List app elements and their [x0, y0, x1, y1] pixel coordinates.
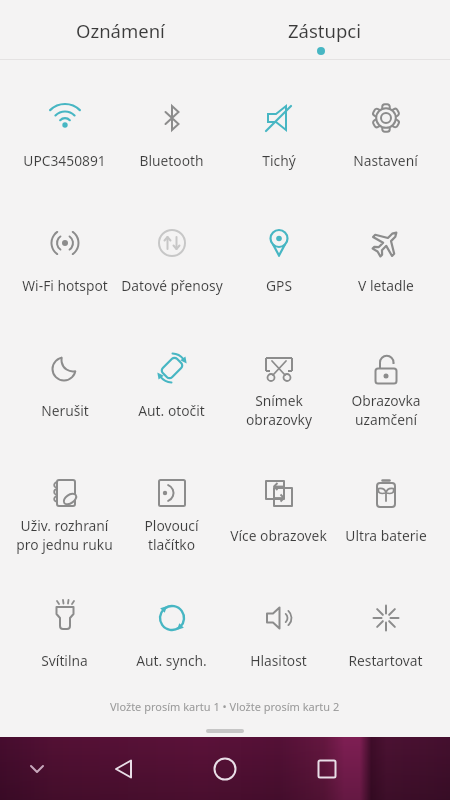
staticText: UPC3450891 — [23, 151, 106, 170]
staticText: Vložte prosím kartu 1 • Vložte prosím ka… — [110, 699, 340, 714]
staticText: Restartovat — [348, 651, 423, 670]
button[interactable]: Více obrazovek — [225, 435, 332, 560]
button[interactable] — [309, 751, 345, 787]
button[interactable]: Zástupci — [288, 18, 361, 43]
button[interactable]: Bluetooth — [118, 60, 225, 185]
staticText: Aut. otočit — [138, 401, 205, 420]
button[interactable] — [105, 751, 141, 787]
staticText: Plovoucí tlačítko — [144, 516, 199, 554]
button[interactable]: Uživ. rozhraní pro jednu ruku — [11, 435, 118, 560]
staticText: Obrazovka uzamčení — [351, 391, 421, 429]
staticText: Tichý — [262, 151, 296, 170]
button[interactable]: Obrazovka uzamčení — [332, 310, 439, 435]
staticText: Bluetooth — [139, 151, 204, 170]
staticText: Oznámení — [76, 18, 165, 43]
button[interactable]: Ultra baterie — [332, 435, 439, 560]
staticText: Nerušit — [41, 401, 89, 420]
button[interactable] — [207, 751, 243, 787]
button[interactable]: Plovoucí tlačítko — [118, 435, 225, 560]
staticText: Hlasitost — [250, 651, 307, 670]
staticText: Nastavení — [353, 151, 418, 170]
button[interactable]: Hlasitost — [225, 560, 332, 685]
button[interactable]: Snímek obrazovky — [225, 310, 332, 435]
button[interactable]: UPC3450891 — [11, 60, 118, 185]
button[interactable]: GPS — [225, 185, 332, 310]
button[interactable]: Nastavení — [332, 60, 439, 185]
button[interactable]: Aut. otočit — [118, 310, 225, 435]
staticText: GPS — [266, 276, 292, 295]
button[interactable]: Svítilna — [11, 560, 118, 685]
staticText: V letadle — [358, 276, 414, 295]
button[interactable] — [22, 754, 52, 784]
staticText: Aut. synch. — [136, 651, 207, 670]
button[interactable]: Oznámení — [76, 18, 165, 43]
button[interactable]: Aut. synch. — [118, 560, 225, 685]
staticText: Snímek obrazovky — [246, 391, 312, 429]
staticText: Ultra baterie — [345, 526, 427, 545]
button[interactable]: Tichý — [225, 60, 332, 185]
staticText: Uživ. rozhraní pro jednu ruku — [16, 516, 113, 554]
staticText: Více obrazovek — [230, 526, 327, 545]
staticText: Wi-Fi hotspot — [22, 276, 108, 295]
button[interactable]: Wi-Fi hotspot — [11, 185, 118, 310]
button[interactable]: V letadle — [332, 185, 439, 310]
staticText: Svítilna — [41, 651, 88, 670]
button[interactable]: Restartovat — [332, 560, 439, 685]
staticText: Datové přenosy — [121, 276, 223, 295]
button[interactable]: Datové přenosy — [118, 185, 225, 310]
staticText: Zástupci — [288, 18, 361, 43]
button[interactable]: Nerušit — [11, 310, 118, 435]
